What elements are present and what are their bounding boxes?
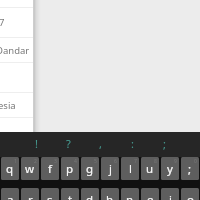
staticText: ; (188, 161, 192, 177)
staticText: 2 (34, 158, 37, 165)
staticText: 6 (114, 158, 117, 165)
staticText: y (167, 161, 173, 177)
button[interactable]: h (101, 188, 119, 200)
staticText: 7 (134, 158, 137, 165)
button[interactable]: r (21, 188, 39, 200)
staticText: : (131, 136, 134, 151)
staticText: ? (66, 136, 71, 151)
staticText: l (129, 161, 132, 177)
button[interactable]: u (141, 157, 159, 180)
staticText: h (106, 192, 114, 200)
button[interactable]: ; (148, 132, 180, 157)
staticText: 0 (194, 158, 197, 165)
button[interactable]: ? (52, 132, 84, 157)
button[interactable]: w (21, 157, 39, 180)
button[interactable]: g (81, 157, 99, 180)
button[interactable]: p (61, 157, 79, 180)
staticText: p (66, 161, 74, 177)
staticText: 7 (0, 16, 5, 29)
button[interactable]: f (41, 157, 59, 180)
button[interactable]: 7 (0, 8, 33, 37)
staticText: 9 (174, 158, 177, 165)
button[interactable]: s (41, 188, 59, 200)
staticText: 8 (154, 158, 157, 165)
button[interactable]: a (1, 188, 19, 200)
button[interactable]: ; (181, 157, 199, 180)
button[interactable]: y (161, 157, 179, 180)
button[interactable]: n (121, 188, 139, 200)
staticText: j (109, 161, 112, 177)
staticText: n (126, 192, 134, 200)
button[interactable]: o (181, 188, 199, 200)
button[interactable]: , (84, 132, 116, 157)
staticText: esia (0, 99, 16, 112)
staticText: f (48, 161, 52, 177)
button[interactable]: e (141, 188, 159, 200)
staticText: 5 (94, 158, 97, 165)
staticText: 1 (14, 158, 17, 165)
staticText: g (86, 161, 94, 177)
button[interactable]: l (121, 157, 139, 180)
button[interactable]: t (61, 188, 79, 200)
staticText: d (86, 192, 94, 200)
button[interactable]: ! (20, 132, 52, 157)
staticText: u (146, 161, 154, 177)
staticText: q (6, 161, 14, 177)
staticText: , (99, 136, 102, 151)
staticText: 4 (74, 158, 77, 165)
button[interactable]: d (81, 188, 99, 200)
staticText: w (25, 161, 35, 177)
button[interactable]: j (101, 157, 119, 180)
button[interactable]: q (1, 157, 19, 180)
staticText: e (147, 192, 154, 200)
button[interactable]: esia (0, 93, 33, 117)
button[interactable]: i (161, 188, 179, 200)
staticText: 3 (54, 158, 57, 165)
button[interactable]: : (116, 132, 148, 157)
staticText: r (28, 192, 33, 200)
button[interactable]: Dandan (0, 38, 33, 62)
staticText: a (7, 192, 14, 200)
staticText: o (187, 192, 194, 200)
staticText: s (47, 192, 53, 200)
staticText: i (169, 192, 172, 200)
staticText: t (68, 192, 73, 200)
staticText: ! (35, 136, 38, 151)
staticText: Dandan (0, 44, 29, 57)
staticText: ; (163, 136, 166, 151)
